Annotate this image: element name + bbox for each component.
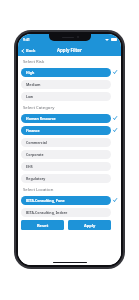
- staticText: Low: [26, 94, 34, 99]
- staticText: Select Location: [23, 186, 54, 192]
- staticText: Regulatory: [26, 176, 46, 181]
- button[interactable]: Finance: [21, 124, 118, 136]
- button[interactable]: Corporate: [21, 148, 118, 160]
- button[interactable]: Reset: [21, 220, 64, 230]
- staticText: Finance: [26, 128, 40, 133]
- button[interactable]: Medium: [21, 78, 118, 90]
- staticText: Human Resource: [26, 116, 56, 121]
- button[interactable]: EHS: [21, 160, 118, 172]
- staticText: 9:41: [23, 37, 30, 42]
- button[interactable]: Commercial: [21, 136, 118, 148]
- staticText: Select Category: [23, 104, 55, 110]
- button[interactable]: Human Resource: [21, 112, 118, 124]
- button[interactable]: High: [21, 66, 118, 78]
- staticText: BITA-Consulting, Indore: [26, 210, 68, 215]
- staticText: Back: [26, 48, 36, 53]
- button[interactable]: Regulatory: [21, 172, 118, 184]
- staticText: EHS: [26, 164, 33, 169]
- button[interactable]: Back: [18, 46, 40, 55]
- button[interactable]: Low: [21, 90, 118, 102]
- button[interactable]: BITA-Consulting, Indore: [21, 206, 118, 218]
- other: Selected: [113, 116, 117, 120]
- staticText: Apply Filter: [57, 47, 82, 53]
- staticText: Corporate: [26, 152, 44, 157]
- staticText: Apply: [84, 223, 96, 228]
- button[interactable]: Apply: [68, 220, 111, 230]
- staticText: High: [26, 70, 35, 75]
- staticText: Medium: [26, 82, 41, 87]
- staticText: Commercial: [26, 140, 47, 145]
- staticText: Reset: [37, 223, 49, 228]
- other: Selected: [113, 198, 117, 202]
- other: Selected: [113, 70, 117, 74]
- staticText: BITA-Consulting, Pune: [26, 198, 65, 203]
- button[interactable]: BITA-Consulting, Pune: [21, 194, 118, 206]
- staticText: Select Risk: [23, 58, 45, 64]
- other: Selected: [113, 128, 117, 132]
